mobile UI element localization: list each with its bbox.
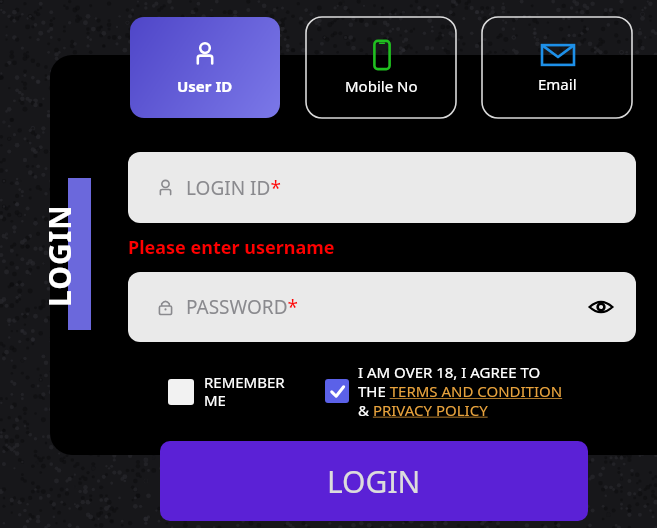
- staticText: PASSWORD*: [186, 294, 299, 320]
- staticText: User ID: [177, 76, 233, 96]
- button[interactable]: PASSWORD*: [128, 272, 636, 342]
- button[interactable]: REMEMBER ME: [168, 372, 285, 411]
- button[interactable]: LOGIN ID*: [128, 152, 636, 223]
- staticText: Please enter username: [128, 235, 335, 260]
- staticText: REMEMBER ME: [204, 372, 285, 411]
- button[interactable]: Email: [482, 17, 632, 118]
- button[interactable]: Mobile No: [306, 17, 456, 118]
- staticText: I AM OVER 18, I AGREE TO THE TERMS AND C…: [358, 362, 563, 420]
- staticText: Email: [538, 74, 577, 94]
- staticText: Mobile No: [345, 76, 418, 96]
- staticText: LOGIN: [327, 461, 421, 502]
- button[interactable]: User ID: [130, 17, 280, 118]
- button[interactable]: Show password: [584, 290, 618, 324]
- button[interactable]: I AM OVER 18, I AGREE TO THE TERMS AND C…: [325, 362, 563, 420]
- button[interactable]: LOGIN: [160, 441, 588, 521]
- staticText: LOGIN ID*: [186, 175, 281, 201]
- staticText: LOGIN: [39, 204, 80, 307]
